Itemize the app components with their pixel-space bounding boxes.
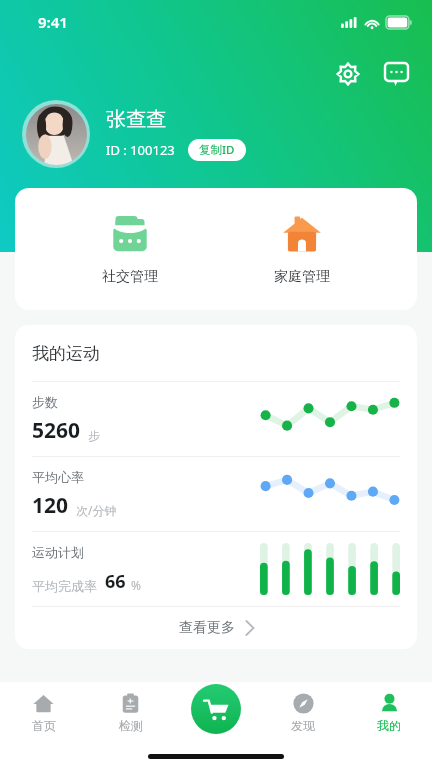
staticText: 平均心率 xyxy=(32,469,84,485)
button[interactable]: 运动计划 xyxy=(15,532,417,606)
staticText: 我的运动 xyxy=(32,343,100,364)
staticText: 步 xyxy=(88,428,100,443)
button[interactable]: 社交管理 xyxy=(74,206,186,292)
staticText: 社交管理 xyxy=(102,268,158,286)
button[interactable]: Messages xyxy=(378,56,414,92)
staticText: 我的 xyxy=(377,718,401,733)
staticText: ID : 100123 xyxy=(106,141,175,159)
staticText: 检测 xyxy=(119,718,143,733)
button[interactable]: 复制ID xyxy=(188,139,246,161)
staticText: 复制ID xyxy=(199,142,235,158)
button[interactable]: Avatar xyxy=(22,100,90,168)
button[interactable]: Shop xyxy=(191,684,241,734)
button[interactable]: Settings xyxy=(330,56,366,92)
staticText: % xyxy=(131,577,141,593)
staticText: 次/分钟 xyxy=(76,502,117,518)
button[interactable]: 查看更多 xyxy=(15,607,417,649)
button[interactable]: 平均心率 xyxy=(15,457,417,531)
button[interactable]: 检测 xyxy=(87,682,174,744)
staticText: 平均完成率 xyxy=(32,578,97,594)
staticText: 120 xyxy=(32,491,69,520)
staticText: 家庭管理 xyxy=(274,268,330,286)
staticText: 发现 xyxy=(291,718,315,733)
button[interactable]: 步数 xyxy=(15,382,417,456)
staticText: 运动计划 xyxy=(32,544,84,560)
button[interactable]: 家庭管理 xyxy=(246,206,358,292)
button[interactable]: 首页 xyxy=(0,682,87,744)
staticText: 查看更多 xyxy=(179,619,235,637)
staticText: 首页 xyxy=(32,718,56,733)
staticText: 66 xyxy=(105,569,126,594)
staticText: 步数 xyxy=(32,394,58,410)
button[interactable]: 我的 xyxy=(346,682,432,744)
staticText: 5260 xyxy=(32,416,81,445)
staticText: 张查查 xyxy=(106,107,166,132)
button[interactable]: 发现 xyxy=(260,682,346,744)
staticText: 9:41 xyxy=(38,12,68,32)
